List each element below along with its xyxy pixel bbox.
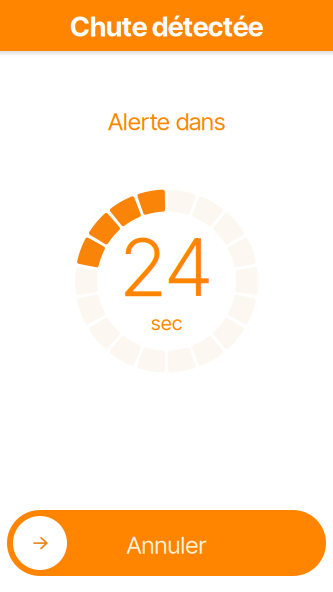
staticText: 24 (120, 219, 213, 315)
staticText: sec (151, 311, 182, 335)
staticText: Annuler (126, 530, 206, 559)
button[interactable]: Annuler (7, 510, 326, 576)
staticText: Chute détectée (70, 10, 263, 43)
staticText: Alerte dans (108, 107, 225, 136)
